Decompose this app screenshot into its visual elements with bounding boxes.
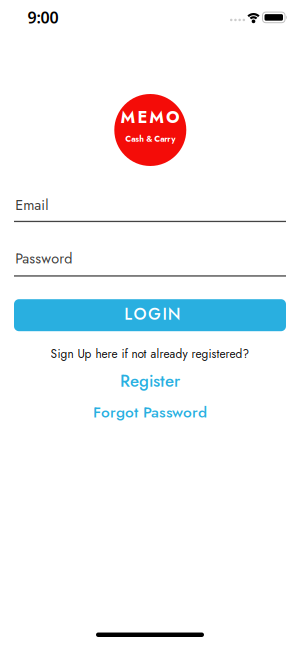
staticText: Password: [15, 248, 72, 269]
staticText: Register: [120, 369, 180, 393]
button[interactable]: Password: [14, 248, 286, 278]
staticText: O: [134, 302, 147, 326]
staticText: Sign Up here if not already registered?: [50, 345, 249, 362]
staticText: E: [137, 105, 147, 129]
button[interactable]: Forgot Password: [0, 401, 300, 423]
button[interactable]: L: [14, 299, 286, 331]
button[interactable]: Email: [14, 195, 286, 225]
staticText: L: [124, 302, 132, 326]
button[interactable]: Register: [0, 369, 300, 393]
staticText: G: [148, 302, 161, 326]
staticText: Forgot Password: [93, 401, 207, 423]
staticText: M: [149, 105, 164, 129]
staticText: O: [166, 105, 180, 129]
staticText: Cash & Carry: [125, 133, 175, 145]
staticText: I: [162, 302, 166, 326]
staticText: M: [121, 105, 136, 129]
staticText: 9:00: [27, 7, 58, 28]
staticText: Email: [15, 195, 48, 215]
staticText: N: [168, 302, 181, 326]
